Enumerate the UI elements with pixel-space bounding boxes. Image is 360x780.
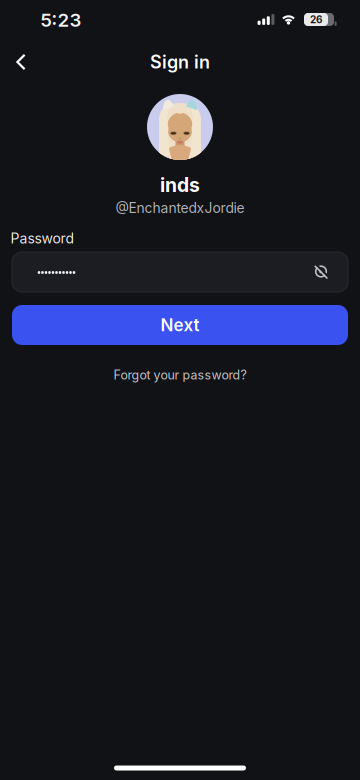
button[interactable]: Forgot your password? (113, 367, 246, 382)
button[interactable]: Back (0, 40, 43, 84)
staticText: Password (10, 230, 74, 247)
staticText: Next (160, 315, 199, 335)
button[interactable]: Show password (303, 253, 339, 289)
staticText: Sign in (150, 51, 210, 73)
button[interactable]: Next (12, 305, 348, 345)
staticText: 26 (310, 13, 322, 26)
staticText: 5:23 (40, 9, 81, 31)
staticText: Forgot your password? (113, 367, 246, 382)
staticText: @EnchantedxJordie (115, 200, 244, 216)
staticText: inds (160, 173, 200, 197)
